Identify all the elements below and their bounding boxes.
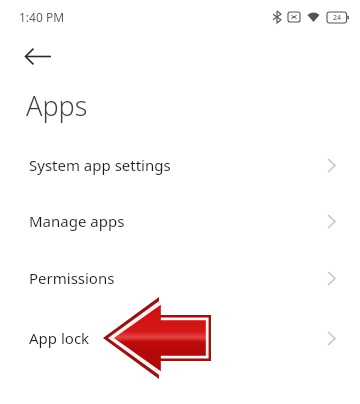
staticText: System app settings [29, 155, 171, 175]
staticText: Permissions [29, 268, 115, 288]
staticText: 1:40 PM [19, 9, 65, 25]
button[interactable]: System app settings [0, 137, 360, 193]
staticText: Manage apps [29, 211, 125, 231]
button[interactable]: Permissions [0, 250, 360, 306]
button[interactable]: Back [18, 37, 56, 75]
staticText: Apps [26, 87, 88, 124]
staticText: App lock [29, 328, 90, 348]
button[interactable]: App lock [0, 310, 360, 366]
button[interactable]: Manage apps [0, 193, 360, 249]
staticText: 24 [333, 13, 342, 23]
